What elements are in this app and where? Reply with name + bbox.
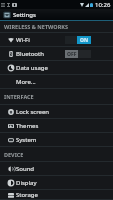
button[interactable]: Storage [0,190,113,200]
button[interactable]: Wi-Fi [0,33,113,47]
staticText: Data usage [16,64,48,72]
button[interactable]: Lock screen [0,105,113,119]
button[interactable]: ON [65,36,91,44]
staticText: 10:26 [95,1,111,9]
staticText: WIRELESS & NETWORKS [4,23,113,30]
staticText: DEVICE [4,151,113,158]
staticText: Themes [16,122,39,130]
staticText: Settings [13,11,36,19]
staticText: Lock screen [16,108,50,116]
staticText: More... [16,78,36,86]
staticText: System [16,136,37,144]
button[interactable]: Settings [0,9,113,20]
button[interactable]: Themes [0,119,113,133]
button[interactable]: System [0,133,113,147]
button[interactable]: Display [0,176,113,190]
staticText: Display [16,179,37,187]
button[interactable]: Bluetooth [0,47,113,61]
staticText: ON [80,37,89,44]
staticText: Bluetooth [16,50,44,58]
button[interactable]: Data usage [0,61,113,75]
staticText: INTERFACE [4,93,113,100]
staticText: Sound [16,165,35,173]
staticText: Storage [16,191,38,199]
staticText: OFF [67,51,77,58]
button[interactable]: Sound [0,162,113,176]
button[interactable]: More... [0,75,113,89]
staticText: Wi-Fi [16,36,30,44]
button[interactable]: OFF [65,50,91,58]
